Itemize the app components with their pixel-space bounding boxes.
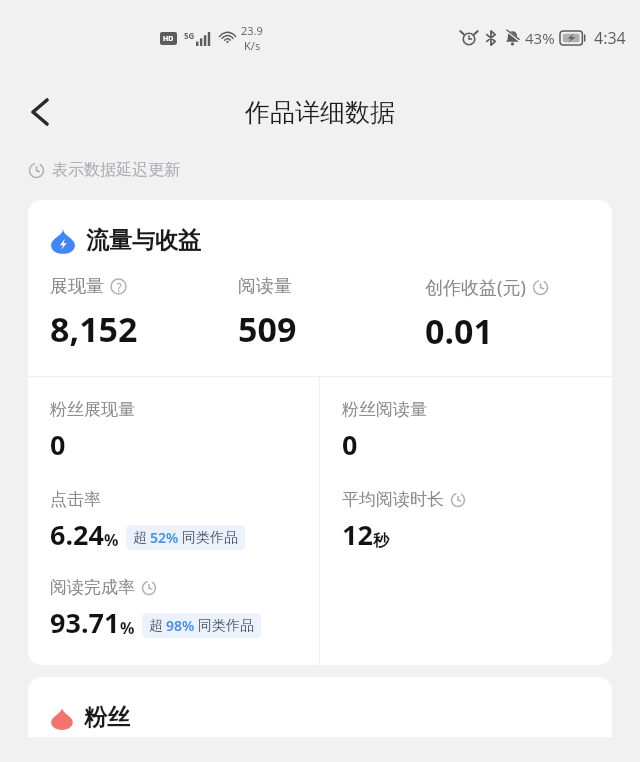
staticText: 粉丝阅读量 — [342, 399, 427, 420]
button[interactable]: Back — [14, 86, 66, 138]
staticText: 秒 — [373, 531, 389, 551]
staticText: 0.01 — [425, 308, 493, 354]
staticText: 阅读完成率 — [50, 577, 135, 598]
staticText: 超 — [149, 617, 163, 635]
staticText: 4:34 — [594, 27, 626, 49]
staticText: 阅读量 — [238, 275, 292, 298]
staticText: % — [120, 617, 135, 639]
staticText: 43% — [525, 28, 555, 48]
staticText: 粉丝 — [84, 703, 130, 732]
staticText: HD — [163, 34, 174, 44]
staticText: 8,152 — [50, 306, 138, 352]
staticText: 0 — [342, 426, 358, 463]
staticText: 创作收益(元) — [425, 275, 526, 300]
staticText: 粉丝展现量 — [50, 399, 135, 420]
staticText: 同类作品 — [198, 617, 254, 635]
staticText: ? — [116, 279, 122, 295]
staticText: K/s — [244, 38, 261, 53]
staticText: 流量与收益 — [86, 226, 201, 255]
staticText: 12 — [342, 516, 373, 553]
staticText: 展现量 — [50, 275, 104, 298]
staticText: 23.9 — [241, 23, 263, 38]
staticText: 6.24 — [50, 516, 104, 553]
staticText: 509 — [238, 306, 297, 352]
staticText: 点击率 — [50, 489, 101, 510]
staticText: 93.71 — [50, 604, 120, 641]
staticText: 5G — [184, 30, 195, 41]
staticText: 52% — [150, 528, 179, 547]
staticText: 表示数据延迟更新 — [52, 160, 180, 180]
staticText: 平均阅读时长 — [342, 489, 444, 510]
staticText: 超 — [133, 529, 147, 547]
staticText: 98% — [166, 616, 195, 635]
staticText: 作品详细数据 — [245, 97, 395, 128]
staticText: 0 — [50, 426, 66, 463]
staticText: 同类作品 — [182, 529, 238, 547]
staticText: % — [104, 529, 119, 551]
